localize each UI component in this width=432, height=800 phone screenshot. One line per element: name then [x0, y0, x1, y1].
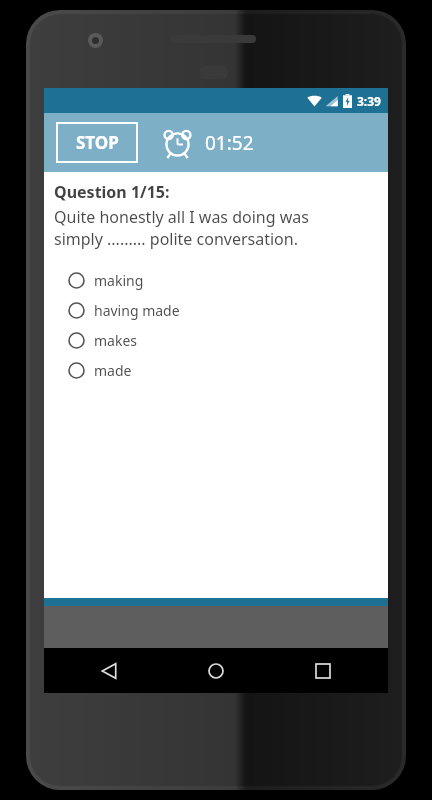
other: Timer — [161, 126, 194, 159]
button[interactable]: makes — [54, 325, 380, 355]
button[interactable]: Recent apps — [302, 650, 344, 692]
staticText: makes — [94, 331, 138, 350]
staticText: STOP — [76, 131, 119, 154]
button[interactable]: Home — [195, 650, 237, 692]
staticText: making — [94, 271, 144, 290]
button[interactable]: STOP — [56, 122, 138, 163]
button[interactable]: making — [54, 265, 380, 295]
staticText: 01:52 — [205, 130, 254, 156]
staticText: 3:39 — [357, 93, 381, 109]
button[interactable]: having made — [54, 295, 380, 325]
staticText: having made — [94, 301, 180, 320]
staticText: Quite honestly all I was doing was simpl… — [54, 206, 380, 250]
button[interactable]: made — [54, 355, 380, 385]
button[interactable]: Back — [88, 650, 130, 692]
staticText: made — [94, 361, 132, 380]
staticText: Question 1/15: — [54, 181, 170, 203]
